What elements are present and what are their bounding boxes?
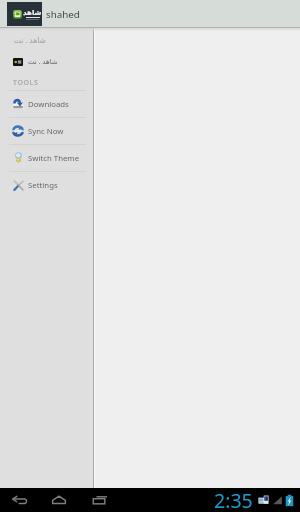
staticText: TOOLS (13, 78, 39, 88)
button[interactable]: Recent apps (89, 489, 111, 511)
staticText: شاهد . نت (14, 35, 46, 45)
staticText: Downloads (28, 99, 69, 110)
button[interactable]: Switch Theme (0, 145, 93, 171)
staticText: Settings (28, 180, 58, 191)
staticText: Sync Now (28, 126, 64, 137)
staticText: shahed (46, 8, 80, 21)
button[interactable]: Home (48, 489, 70, 511)
staticText: 2:35 (214, 487, 253, 511)
button[interactable]: Open navigation (7, 2, 42, 26)
staticText: شاهد . نت (28, 57, 58, 67)
staticText: شاهد (23, 9, 42, 17)
staticText: Switch Theme (28, 153, 80, 164)
button[interactable]: Sync Now (0, 118, 93, 144)
button[interactable]: شاهد . نت (0, 49, 93, 75)
button[interactable]: Back (9, 489, 31, 511)
button[interactable]: Settings (0, 172, 93, 198)
button[interactable]: Downloads (0, 91, 93, 117)
